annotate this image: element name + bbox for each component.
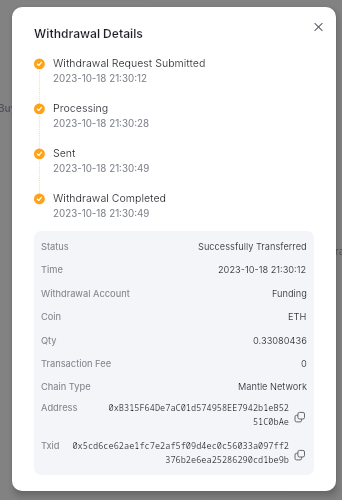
staticText: 0.33080436	[253, 335, 307, 346]
staticText: 2023-10-18 21:30:28	[53, 118, 150, 130]
staticText: 0x5cd6ce62ae1fc7e2af5f09d4ec0c56033a097f…	[72, 440, 289, 466]
staticText: Transaction Fee	[41, 358, 112, 369]
staticText: 0xB315F64De7aC01d574958EE7942b1eB52 51C0…	[108, 402, 289, 428]
staticText: Buy	[0, 102, 17, 114]
staticText: Withdrawal Completed	[53, 192, 166, 205]
staticText: Withdrawal Details	[34, 26, 143, 41]
staticText: 2023-10-18 21:30:12	[53, 73, 147, 85]
staticText: 0	[301, 358, 307, 369]
staticText: ra	[335, 245, 342, 257]
staticText: Qty	[41, 335, 57, 346]
staticText: ETH	[288, 311, 307, 322]
staticText: Funding	[272, 288, 307, 299]
staticText: Processing	[53, 102, 109, 115]
staticText: Withdrawal Request Submitted	[53, 57, 206, 70]
button[interactable]: Copy	[294, 411, 307, 424]
staticText: Sent	[53, 147, 76, 160]
button[interactable]: Copy	[294, 449, 307, 462]
staticText: Successfully Transferred	[198, 241, 307, 252]
staticText: Chain Type	[41, 381, 91, 392]
staticText: Time	[41, 264, 63, 275]
staticText: Coin	[41, 311, 62, 322]
button[interactable]: Close	[308, 16, 330, 38]
staticText: Status	[41, 241, 69, 252]
staticText: Address	[41, 402, 78, 413]
staticText: 2023-10-18 21:30:49	[53, 163, 150, 175]
staticText: 2023-10-18 21:30:49	[53, 208, 150, 220]
staticText: Mantle Network	[238, 381, 307, 392]
staticText: Withdrawal Account	[41, 288, 130, 299]
staticText: 2023-10-18 21:30:12	[218, 264, 307, 275]
staticText: Txid	[41, 440, 60, 451]
